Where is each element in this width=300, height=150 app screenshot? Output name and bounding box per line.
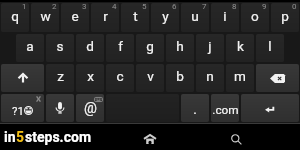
button[interactable]: w bbox=[31, 3, 59, 32]
button[interactable]: r bbox=[91, 3, 119, 32]
button[interactable]: j bbox=[196, 34, 224, 62]
button[interactable]: Search bbox=[221, 124, 252, 150]
button[interactable]: v bbox=[136, 64, 164, 92]
staticText: g bbox=[146, 38, 154, 54]
staticText: f bbox=[118, 38, 123, 54]
staticText: 9 bbox=[262, 3, 267, 11]
staticText: . bbox=[193, 101, 197, 117]
button[interactable]: y bbox=[151, 3, 179, 32]
button[interactable]: Enter bbox=[241, 94, 299, 122]
staticText: m bbox=[234, 68, 246, 84]
staticText: l bbox=[268, 38, 272, 54]
button[interactable]: Backspace bbox=[256, 64, 299, 92]
staticText: c bbox=[116, 68, 124, 84]
button[interactable]: l bbox=[256, 34, 284, 62]
button[interactable]: Voice input bbox=[46, 94, 74, 122]
staticText: z bbox=[57, 68, 64, 84]
staticText: a bbox=[26, 38, 34, 54]
button[interactable]: o bbox=[241, 3, 269, 32]
staticText: e bbox=[71, 8, 79, 24]
button[interactable]: c bbox=[106, 64, 134, 92]
button[interactable]: q bbox=[1, 3, 29, 32]
button[interactable]: Symbols and emoji bbox=[1, 94, 44, 122]
button[interactable]: b bbox=[166, 64, 194, 92]
button[interactable]: u bbox=[181, 3, 209, 32]
staticText: 3 bbox=[82, 3, 87, 11]
staticText: 5 bbox=[16, 129, 25, 145]
staticText: i bbox=[223, 8, 227, 24]
staticText: 7 bbox=[202, 3, 207, 11]
staticText: y bbox=[162, 8, 169, 24]
staticText: in bbox=[4, 129, 16, 145]
staticText: n bbox=[206, 68, 214, 84]
staticText: q bbox=[11, 8, 19, 24]
staticText: 8 bbox=[232, 3, 237, 11]
staticText: b bbox=[176, 68, 184, 84]
staticText: o bbox=[251, 8, 259, 24]
button[interactable]: d bbox=[76, 34, 104, 62]
button[interactable]: z bbox=[46, 64, 74, 92]
button[interactable]: m bbox=[226, 64, 254, 92]
staticText: t bbox=[133, 8, 138, 24]
staticText: d bbox=[86, 38, 94, 54]
staticText: 5 bbox=[142, 3, 147, 11]
staticText: v bbox=[147, 68, 154, 84]
button[interactable]: s bbox=[46, 34, 74, 62]
button[interactable]: a bbox=[16, 34, 44, 62]
staticText: r bbox=[103, 8, 108, 24]
button[interactable]: h bbox=[166, 34, 194, 62]
staticText: s bbox=[56, 38, 64, 54]
staticText: ?1 bbox=[12, 104, 24, 117]
staticText: .com bbox=[212, 103, 239, 117]
button[interactable]: At sign bbox=[76, 94, 104, 122]
button[interactable]: i bbox=[211, 3, 239, 32]
button[interactable]: f bbox=[106, 34, 134, 62]
staticText: x bbox=[87, 68, 94, 84]
button[interactable]: e bbox=[61, 3, 89, 32]
button[interactable]: Home bbox=[134, 124, 166, 150]
staticText: steps.com bbox=[25, 129, 92, 145]
button[interactable]: t bbox=[121, 3, 149, 32]
staticText: h bbox=[176, 38, 184, 54]
button[interactable]: p bbox=[271, 3, 299, 32]
staticText: 0 bbox=[292, 3, 297, 11]
button[interactable]: x bbox=[76, 64, 104, 92]
staticText: @ bbox=[84, 100, 97, 117]
staticText: j bbox=[208, 38, 212, 54]
button[interactable]: g bbox=[136, 34, 164, 62]
staticText: 2 bbox=[52, 3, 57, 11]
staticText: w bbox=[40, 8, 51, 24]
staticText: u bbox=[191, 8, 199, 24]
staticText: k bbox=[237, 38, 244, 54]
button[interactable]: .com bbox=[211, 94, 239, 122]
button[interactable]: Period bbox=[181, 94, 209, 122]
button[interactable]: n bbox=[196, 64, 224, 92]
staticText: 6 bbox=[172, 3, 177, 11]
button[interactable]: k bbox=[226, 34, 254, 62]
staticText: 4 bbox=[112, 3, 117, 11]
staticText: p bbox=[281, 8, 289, 24]
staticText: 1 bbox=[22, 3, 27, 11]
button[interactable]: Shift bbox=[1, 64, 44, 92]
